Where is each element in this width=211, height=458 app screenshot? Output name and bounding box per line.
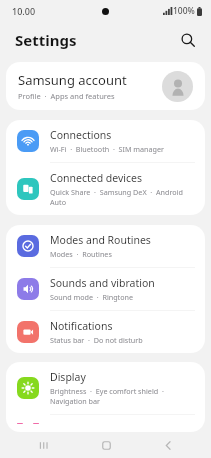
button[interactable]: Home bbox=[86, 432, 126, 458]
button[interactable]: Search bbox=[175, 27, 201, 53]
staticText: Quick Share · Samsung DeX · Android Auto bbox=[50, 187, 195, 207]
button[interactable]: Modes and Routines bbox=[6, 225, 205, 267]
staticText: Modes · Routines bbox=[50, 249, 112, 259]
staticText: Settings bbox=[15, 30, 77, 50]
button[interactable]: Notifications bbox=[6, 311, 205, 353]
staticText: Display bbox=[50, 370, 86, 384]
staticText: Connections bbox=[50, 128, 112, 142]
staticText: Sounds and vibration bbox=[50, 276, 155, 290]
staticText: Samsung account bbox=[18, 71, 127, 89]
button[interactable]: Profile picture bbox=[162, 71, 193, 102]
staticText: 10.00 bbox=[12, 5, 36, 17]
staticText: Wi-Fi · Bluetooth · SIM manager bbox=[50, 144, 165, 154]
staticText: Connected devices bbox=[50, 171, 143, 185]
button[interactable]: Wallpaper and style bbox=[6, 415, 205, 432]
button[interactable]: Display bbox=[6, 362, 205, 414]
staticText: 100% bbox=[173, 5, 195, 17]
staticText: Status bar · Do not disturb bbox=[50, 335, 143, 345]
staticText: Sound mode · Ringtone bbox=[50, 292, 134, 302]
staticText: Notifications bbox=[50, 319, 113, 333]
button[interactable]: Recent apps bbox=[23, 432, 63, 458]
button[interactable]: Sounds and vibration bbox=[6, 268, 205, 310]
button[interactable]: Connected devices bbox=[6, 163, 205, 215]
button[interactable]: Connections bbox=[6, 120, 205, 162]
staticText: Profile · Apps and features bbox=[18, 91, 115, 101]
staticText: Brightness · Eye comfort shield · Naviga… bbox=[50, 386, 195, 406]
button[interactable]: Back bbox=[148, 432, 188, 458]
staticText: Modes and Routines bbox=[50, 233, 151, 247]
button[interactable]: Samsung account bbox=[6, 62, 205, 110]
